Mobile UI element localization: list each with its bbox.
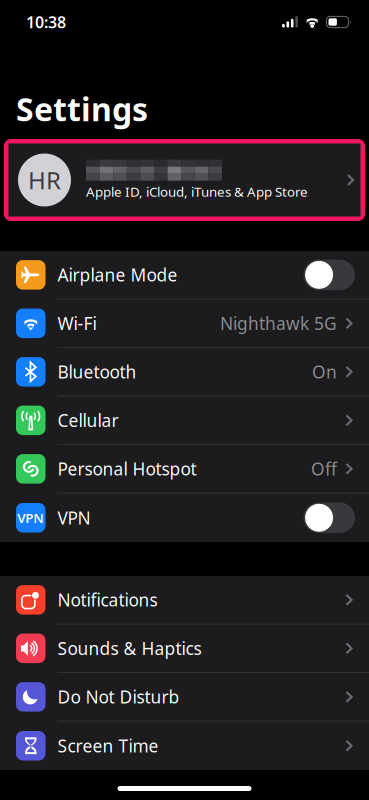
staticText: Screen Time [57, 734, 158, 757]
button[interactable]: Personal Hotspot [0, 445, 369, 493]
staticText: 10:38 [26, 11, 66, 33]
staticText: Airplane Mode [57, 263, 177, 286]
staticText: Notifications [57, 588, 157, 611]
button[interactable]: Cellular [0, 396, 369, 445]
staticText: Nighthawk 5G [220, 312, 337, 335]
staticText: Settings [16, 87, 148, 130]
button[interactable]: Airplane Mode [0, 251, 369, 299]
staticText: Sounds & Haptics [57, 637, 201, 660]
staticText: Do Not Disturb [57, 685, 179, 708]
staticText: Bluetooth [57, 360, 136, 383]
button[interactable]: Do Not Disturb [0, 673, 369, 721]
staticText: VPN [17, 509, 44, 527]
button[interactable]: Sounds & Haptics [0, 624, 369, 673]
staticText: VPN [57, 506, 90, 529]
staticText: Apple ID, iCloud, iTunes & App Store [86, 183, 308, 200]
staticText: Off [311, 457, 337, 480]
button[interactable]: Bluetooth [0, 348, 369, 396]
staticText: Personal Hotspot [57, 457, 196, 480]
button[interactable]: Apple ID, iCloud, iTunes & App Store [8, 143, 360, 216]
button[interactable]: Screen Time [0, 721, 369, 770]
staticText: Cellular [57, 409, 118, 432]
staticText: HR [28, 164, 61, 196]
staticText: Wi-Fi [57, 312, 96, 335]
button[interactable]: Wi-Fi [0, 299, 369, 348]
staticText: On [312, 360, 337, 383]
button[interactable]: Notifications [0, 576, 369, 624]
button[interactable]: VPN [0, 493, 369, 542]
